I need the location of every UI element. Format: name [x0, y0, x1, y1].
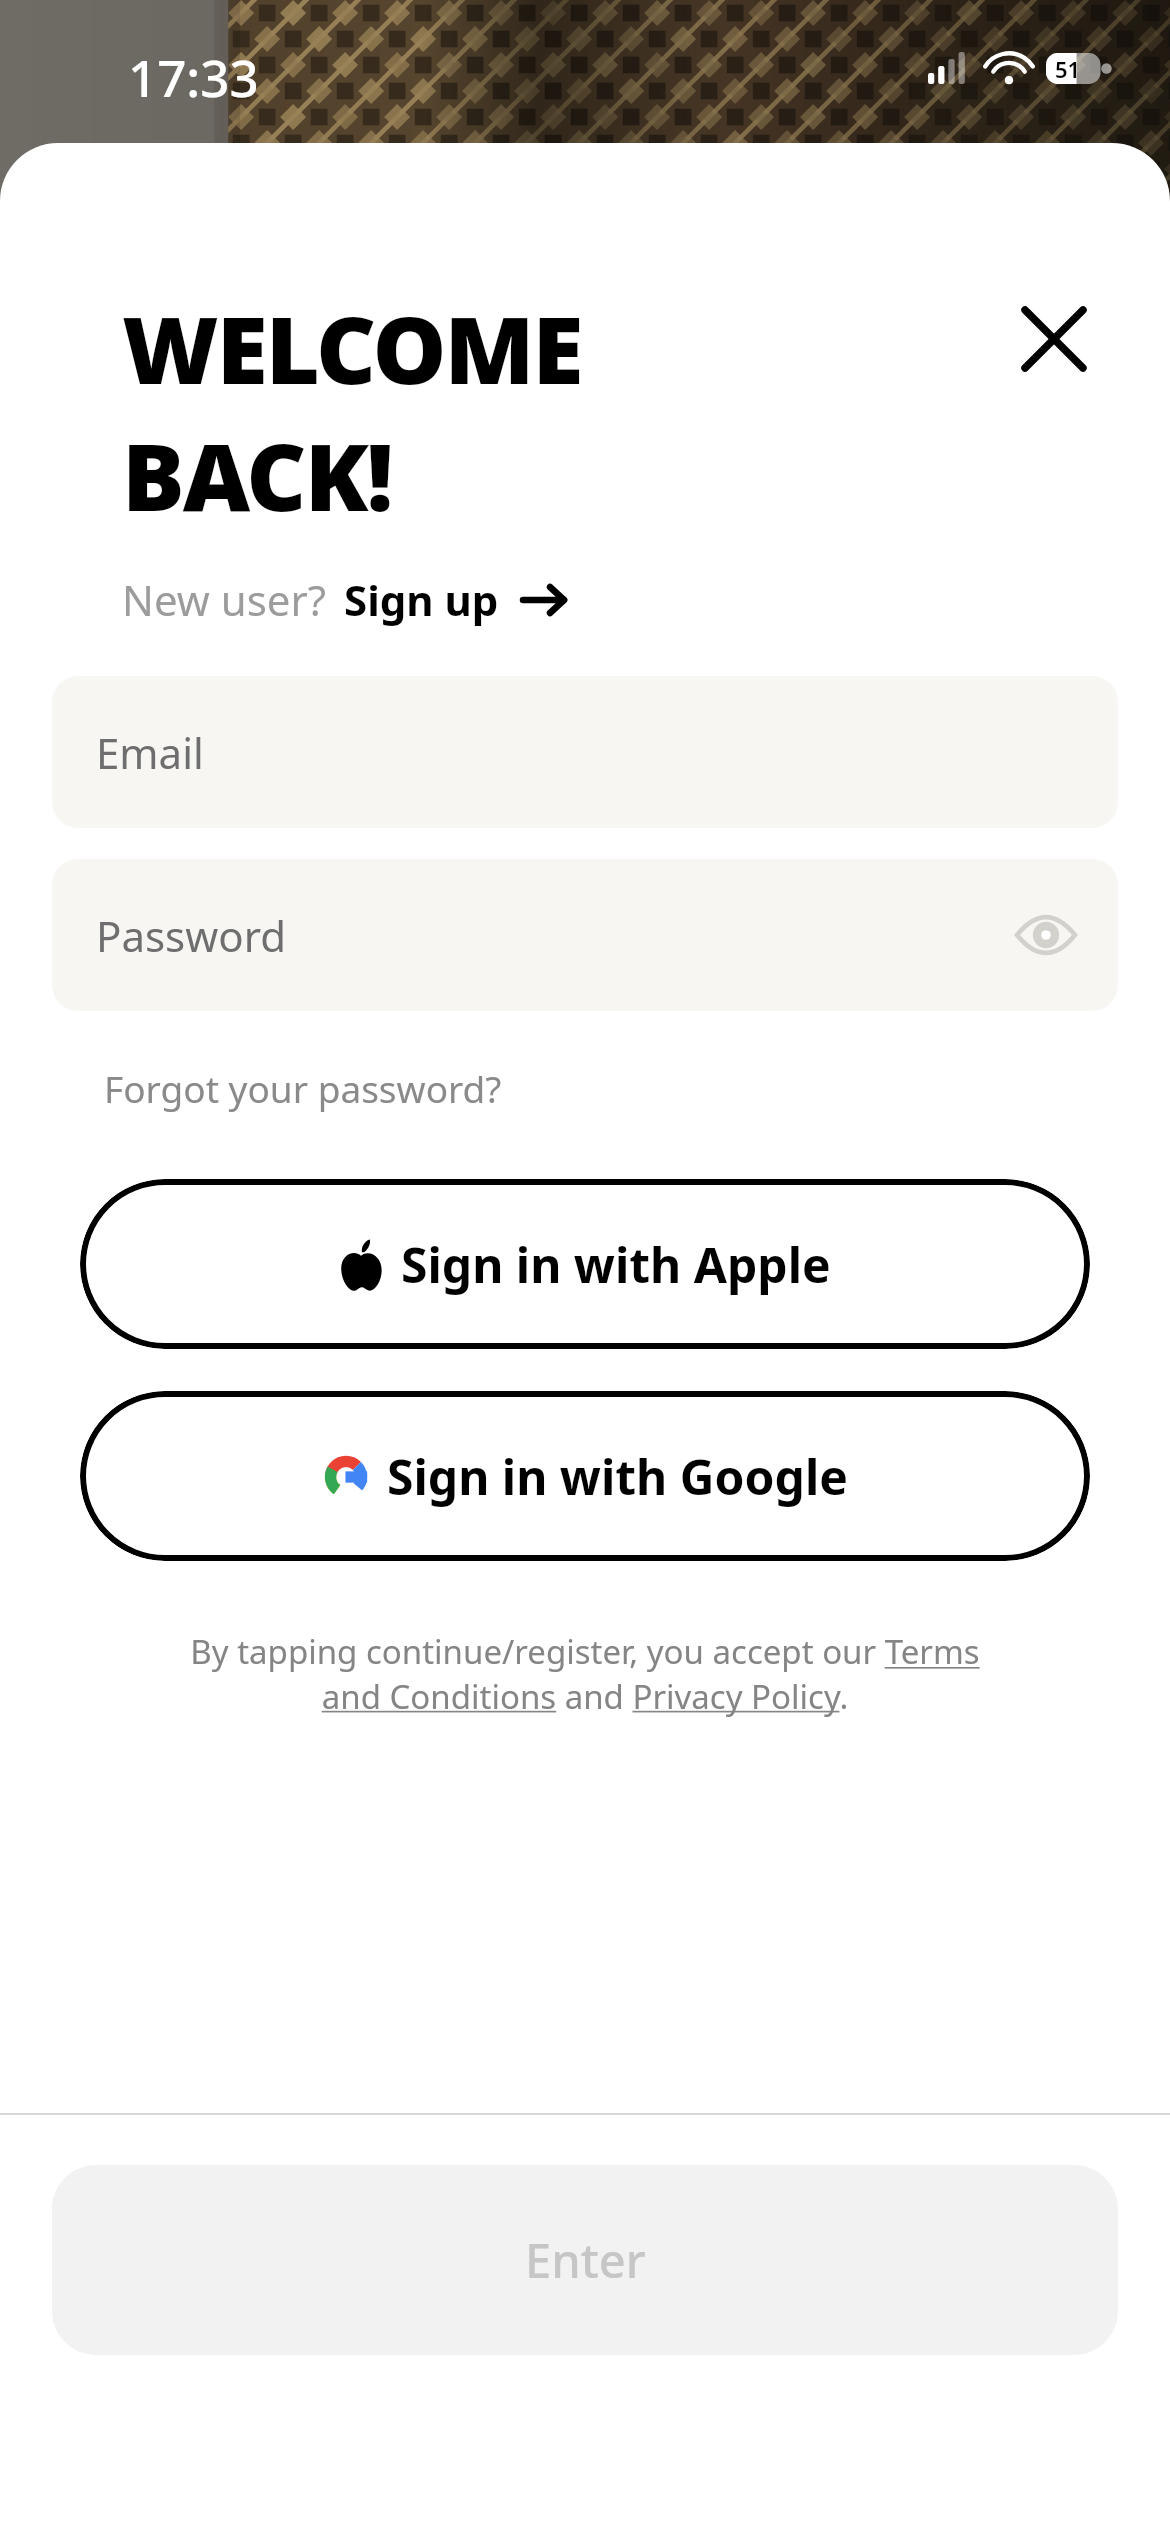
staticText: 17:33 [128, 42, 259, 111]
staticText: Password [96, 907, 286, 964]
button[interactable]: Enter [52, 2165, 1118, 2355]
staticText: 51 [1055, 54, 1081, 84]
staticText: New user? [122, 571, 327, 628]
button[interactable]: Forgot your password? [90, 1053, 516, 1123]
button[interactable]: Close [1006, 291, 1102, 387]
staticText: Sign in with Google [387, 1444, 848, 1509]
button[interactable]: Sign in with Google [80, 1391, 1090, 1561]
staticText: Email [96, 724, 204, 781]
staticText: Sign in with Apple [401, 1232, 831, 1297]
staticText: WELCOME [122, 285, 582, 412]
button[interactable]: Show password [1000, 889, 1092, 981]
staticText: BACK! [122, 412, 392, 539]
button[interactable]: Sign in with Apple [80, 1179, 1090, 1349]
staticText: Forgot your password? [104, 1063, 502, 1113]
staticText: Sign up [344, 571, 499, 628]
button[interactable]: Password [52, 859, 1118, 1011]
staticText: By tapping continue/register, you accept… [160, 1629, 1010, 1718]
staticText: Enter [525, 2228, 646, 2292]
button[interactable]: Email [52, 676, 1118, 828]
button[interactable]: New user? [108, 561, 581, 638]
